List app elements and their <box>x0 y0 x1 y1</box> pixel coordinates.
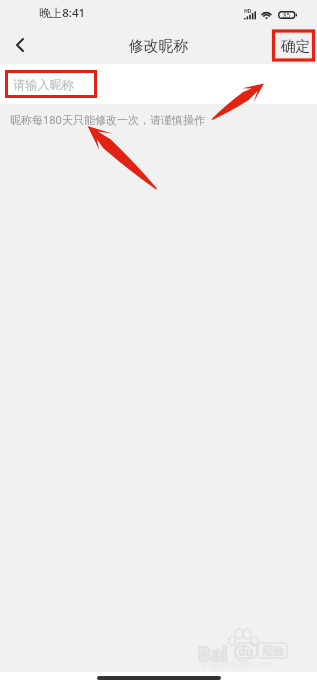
staticText: 昵称每180天只能修改一次，请谨慎操作 <box>10 112 205 127</box>
button[interactable]: 返回 <box>0 28 40 64</box>
staticText: 请输入昵称 <box>13 77 74 92</box>
staticText: 确定 <box>281 37 311 55</box>
staticText: du <box>238 643 254 658</box>
staticText: 晚上8:41 <box>39 5 86 21</box>
staticText: jingyan.baidu.com <box>202 658 272 669</box>
staticText: 经验 <box>262 644 284 658</box>
staticText: HD <box>244 8 252 15</box>
button[interactable]: 确定 <box>277 32 315 60</box>
staticText: 修改昵称 <box>129 37 189 56</box>
staticText: 85 <box>283 11 291 19</box>
staticText: Bai <box>198 641 228 667</box>
